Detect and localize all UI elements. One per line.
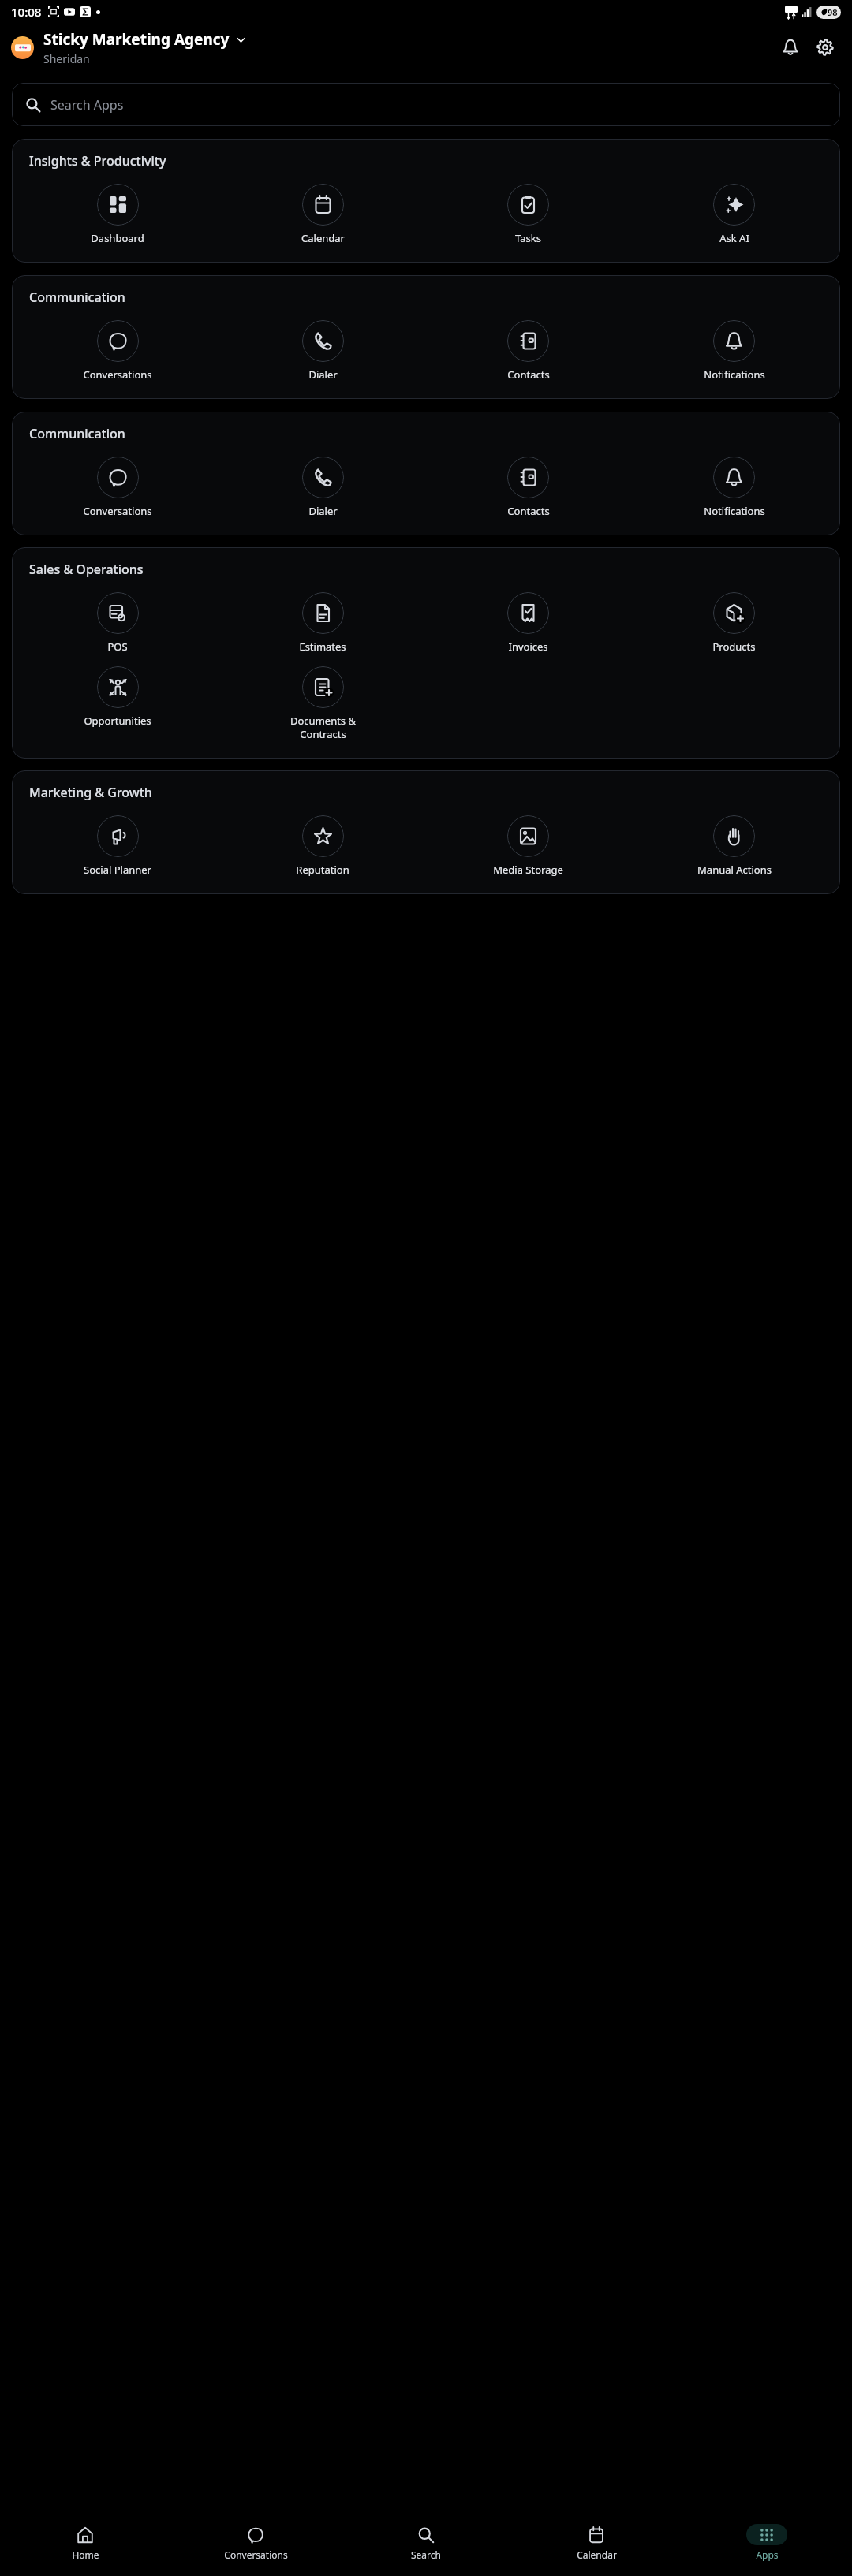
button[interactable]: Notifications bbox=[631, 453, 837, 521]
button[interactable]: Reputation bbox=[220, 812, 425, 880]
staticText: Sales & Operations bbox=[29, 561, 144, 578]
button[interactable]: Products bbox=[631, 589, 837, 657]
button[interactable]: Settings bbox=[808, 30, 843, 65]
staticText: Communication bbox=[29, 289, 125, 306]
staticText: Contacts bbox=[507, 367, 550, 382]
button[interactable]: Calendar bbox=[511, 2518, 682, 2567]
staticText: Communication bbox=[29, 425, 125, 442]
staticText: Media Storage bbox=[493, 863, 563, 877]
button[interactable]: Sticky Marketing Agency bbox=[43, 29, 246, 50]
button[interactable]: Notifications bbox=[631, 317, 837, 385]
staticText: Contacts bbox=[507, 504, 550, 518]
staticText: Search bbox=[411, 2548, 441, 2561]
staticText: 10:08 bbox=[11, 4, 42, 20]
staticText: Search Apps bbox=[50, 96, 124, 114]
staticText: Dialer bbox=[308, 504, 338, 518]
staticText: Invoices bbox=[508, 639, 548, 654]
staticText: Tasks bbox=[515, 231, 541, 245]
button[interactable]: Conversations bbox=[15, 453, 220, 521]
staticText: Calendar bbox=[577, 2548, 617, 2561]
button[interactable]: Account avatar bbox=[11, 36, 34, 59]
button[interactable]: Dialer bbox=[220, 317, 425, 385]
button[interactable]: POS bbox=[15, 589, 220, 657]
staticText: Conversations bbox=[83, 504, 152, 518]
button[interactable]: Estimates bbox=[220, 589, 425, 657]
staticText: Insights & Productivity bbox=[29, 152, 166, 170]
staticText: Conversations bbox=[83, 367, 152, 382]
button[interactable]: Tasks bbox=[425, 181, 631, 248]
staticText: Sticky Marketing Agency bbox=[43, 29, 230, 50]
staticText: Dialer bbox=[308, 367, 338, 382]
button[interactable]: Documents & Contracts bbox=[220, 663, 425, 744]
staticText: Conversations bbox=[224, 2548, 288, 2561]
button[interactable]: Opportunities bbox=[15, 663, 220, 731]
button[interactable]: Conversations bbox=[170, 2518, 341, 2567]
staticText: Apps bbox=[756, 2548, 779, 2561]
staticText: Manual Actions bbox=[697, 863, 772, 877]
button[interactable]: Calendar bbox=[220, 181, 425, 248]
button[interactable]: Home bbox=[0, 2518, 170, 2567]
staticText: POS bbox=[107, 639, 128, 654]
staticText: Notifications bbox=[704, 367, 765, 382]
staticText: Calendar bbox=[301, 231, 345, 245]
button[interactable]: Contacts bbox=[425, 317, 631, 385]
button[interactable]: Manual Actions bbox=[631, 812, 837, 880]
button[interactable]: Conversations bbox=[15, 317, 220, 385]
staticText: Estimates bbox=[299, 639, 346, 654]
staticText: Ask AI bbox=[719, 231, 749, 245]
button[interactable]: Social Planner bbox=[15, 812, 220, 880]
button[interactable]: Search bbox=[341, 2518, 511, 2567]
button[interactable]: Dialer bbox=[220, 453, 425, 521]
button[interactable]: Invoices bbox=[425, 589, 631, 657]
staticText: Documents & Contracts bbox=[290, 714, 356, 741]
staticText: 98 bbox=[828, 6, 838, 18]
staticText: Marketing & Growth bbox=[29, 784, 152, 801]
staticText: Reputation bbox=[296, 863, 349, 877]
button[interactable]: Media Storage bbox=[425, 812, 631, 880]
staticText: Social Planner bbox=[84, 863, 151, 877]
staticText: Home bbox=[72, 2548, 99, 2561]
button[interactable]: Dashboard bbox=[15, 181, 220, 248]
staticText: Opportunities bbox=[84, 714, 151, 728]
button[interactable]: Ask AI bbox=[631, 181, 837, 248]
staticText: Sheridan bbox=[43, 51, 90, 66]
staticText: Products bbox=[712, 639, 756, 654]
staticText: Dashboard bbox=[91, 231, 144, 245]
button[interactable]: Search Apps bbox=[12, 83, 840, 126]
button[interactable]: Apps bbox=[682, 2518, 852, 2567]
staticText: Notifications bbox=[704, 504, 765, 518]
button[interactable]: Notifications bbox=[773, 30, 808, 65]
button[interactable]: Contacts bbox=[425, 453, 631, 521]
